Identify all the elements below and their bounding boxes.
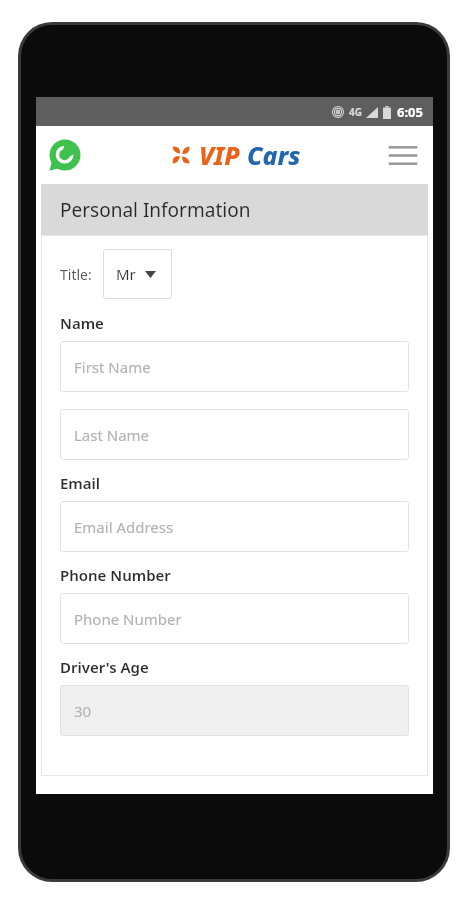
staticText: 4G — [349, 105, 362, 119]
staticText: Cars — [247, 138, 301, 172]
button[interactable]: First Name — [60, 341, 409, 392]
staticText: Personal Information — [60, 197, 251, 223]
staticText: Title: — [60, 265, 92, 284]
button[interactable]: Mr — [103, 249, 172, 299]
button[interactable]: Phone Number — [60, 593, 409, 644]
staticText: Email — [60, 473, 101, 493]
staticText: First Name — [74, 357, 151, 377]
staticText: Phone Number — [60, 565, 171, 585]
staticText: Last Name — [74, 425, 150, 445]
staticText: Email Address — [74, 517, 174, 537]
button[interactable]: Last Name — [60, 409, 409, 460]
staticText: Phone Number — [74, 609, 182, 629]
button[interactable]: WhatsApp — [46, 136, 84, 174]
staticText: Driver's Age — [60, 657, 149, 677]
staticText: 30 — [74, 701, 92, 721]
button[interactable]: Email Address — [60, 501, 409, 552]
button[interactable]: 30 — [60, 685, 409, 736]
staticText: Mr — [116, 264, 136, 284]
staticText: VIP — [199, 138, 240, 172]
button[interactable]: Menu — [385, 137, 421, 173]
staticText: Name — [60, 313, 104, 333]
staticText: 6:05 — [397, 103, 423, 121]
button[interactable]: VIP — [168, 138, 301, 172]
